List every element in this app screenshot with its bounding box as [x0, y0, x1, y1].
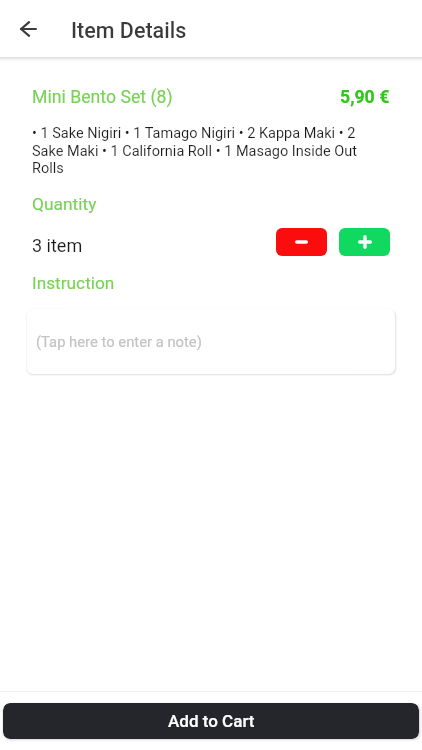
staticText: 5,90 € [340, 87, 390, 108]
button[interactable]: Decrease quantity [276, 228, 327, 256]
staticText: • 1 Sake Nigiri • 1 Tamago Nigiri • 2 Ka… [32, 125, 390, 176]
staticText: Mini Bento Set (8) [32, 87, 173, 108]
button[interactable]: (Tap here to enter a note) [27, 309, 395, 374]
staticText: Item Details [71, 18, 187, 43]
staticText: Add to Cart [168, 711, 255, 731]
staticText: Instruction [32, 273, 115, 293]
staticText: 3 item [32, 235, 83, 256]
staticText: Quantity [32, 194, 97, 214]
button[interactable]: Add to Cart [3, 703, 419, 739]
button[interactable]: Back [0, 0, 57, 57]
button[interactable]: Increase quantity [339, 228, 390, 256]
staticText: (Tap here to enter a note) [36, 333, 202, 350]
